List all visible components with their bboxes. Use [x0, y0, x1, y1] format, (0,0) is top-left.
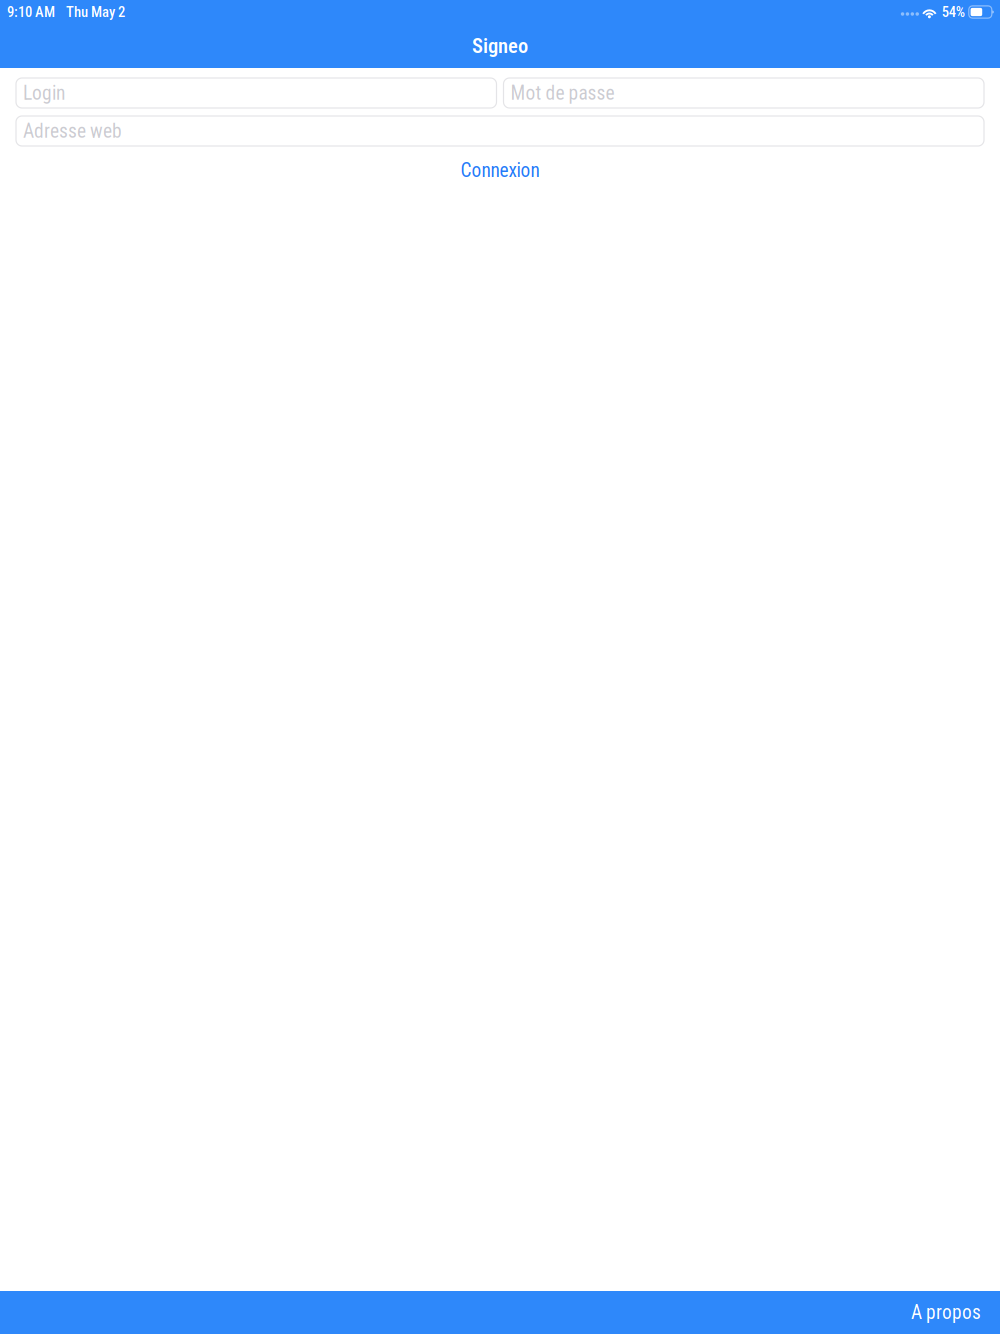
staticText: 54% [942, 3, 965, 21]
button[interactable]: Connexion [16, 154, 984, 183]
staticText: Mot de passe [510, 82, 614, 104]
staticText: Login [23, 82, 65, 104]
button[interactable]: Login [16, 78, 496, 108]
staticText: A propos [911, 1301, 981, 1324]
button[interactable]: Mot de passe [503, 78, 984, 108]
staticText: Adresse web [23, 120, 122, 142]
button[interactable]: Adresse web [16, 116, 984, 146]
staticText: Signeo [472, 34, 528, 58]
button[interactable]: A propos [892, 1291, 1000, 1334]
staticText: Thu May 2 [66, 3, 125, 21]
staticText: Connexion [460, 159, 539, 182]
staticText: 9:10 AM [7, 3, 55, 21]
